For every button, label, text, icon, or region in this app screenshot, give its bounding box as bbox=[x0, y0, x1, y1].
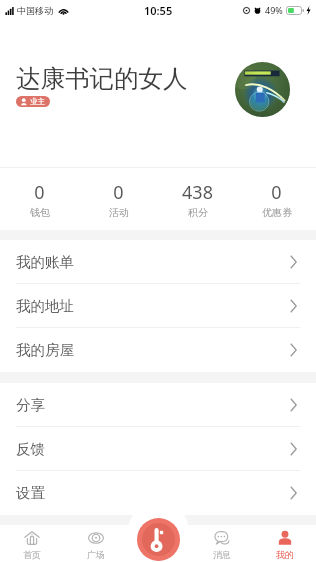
staticText: 分享 bbox=[16, 396, 45, 414]
staticText: 首页 bbox=[23, 549, 41, 560]
staticText: 438 bbox=[182, 180, 213, 205]
staticText: 活动 bbox=[109, 206, 129, 219]
staticText: 积分 bbox=[188, 206, 208, 219]
staticText: 达康书记的女人 bbox=[16, 63, 188, 94]
button[interactable]: 设置 bbox=[0, 471, 316, 515]
button[interactable]: 分享 bbox=[0, 383, 316, 427]
staticText: 我的地址 bbox=[16, 297, 74, 315]
staticText: 设置 bbox=[16, 484, 45, 502]
button[interactable]: 我的 bbox=[253, 525, 316, 562]
button[interactable]: 0 bbox=[237, 168, 316, 230]
button[interactable]: 我的账单 bbox=[0, 240, 316, 284]
button[interactable]: 我的地址 bbox=[0, 284, 316, 328]
button[interactable]: 首页 bbox=[0, 525, 64, 562]
staticText: 0 bbox=[271, 180, 282, 205]
staticText: 49% bbox=[265, 4, 283, 16]
button[interactable]: 业主 bbox=[16, 96, 50, 107]
staticText: 业主 bbox=[30, 97, 45, 106]
staticText: 10:55 bbox=[144, 3, 173, 18]
button[interactable]: 0 bbox=[0, 168, 79, 230]
staticText: 广场 bbox=[87, 549, 105, 560]
button[interactable]: 开锁 bbox=[137, 518, 180, 561]
staticText: 消息 bbox=[213, 549, 231, 560]
staticText: 反馈 bbox=[16, 440, 45, 458]
staticText: 中国移动 bbox=[17, 5, 53, 16]
button[interactable]: 0 bbox=[79, 168, 158, 230]
staticText: 优惠券 bbox=[262, 206, 292, 219]
button[interactable]: 438 bbox=[158, 168, 237, 230]
button[interactable]: 消息 bbox=[190, 525, 253, 562]
button[interactable]: 头像 bbox=[235, 62, 290, 117]
staticText: 0 bbox=[34, 180, 45, 205]
button[interactable]: 广场 bbox=[64, 525, 127, 562]
staticText: 我的房屋 bbox=[16, 341, 74, 359]
staticText: 钱包 bbox=[30, 206, 50, 219]
staticText: 0 bbox=[113, 180, 124, 205]
staticText: 我的 bbox=[276, 549, 294, 560]
button[interactable]: 我的房屋 bbox=[0, 328, 316, 372]
button[interactable]: 反馈 bbox=[0, 427, 316, 471]
staticText: 我的账单 bbox=[16, 253, 74, 271]
